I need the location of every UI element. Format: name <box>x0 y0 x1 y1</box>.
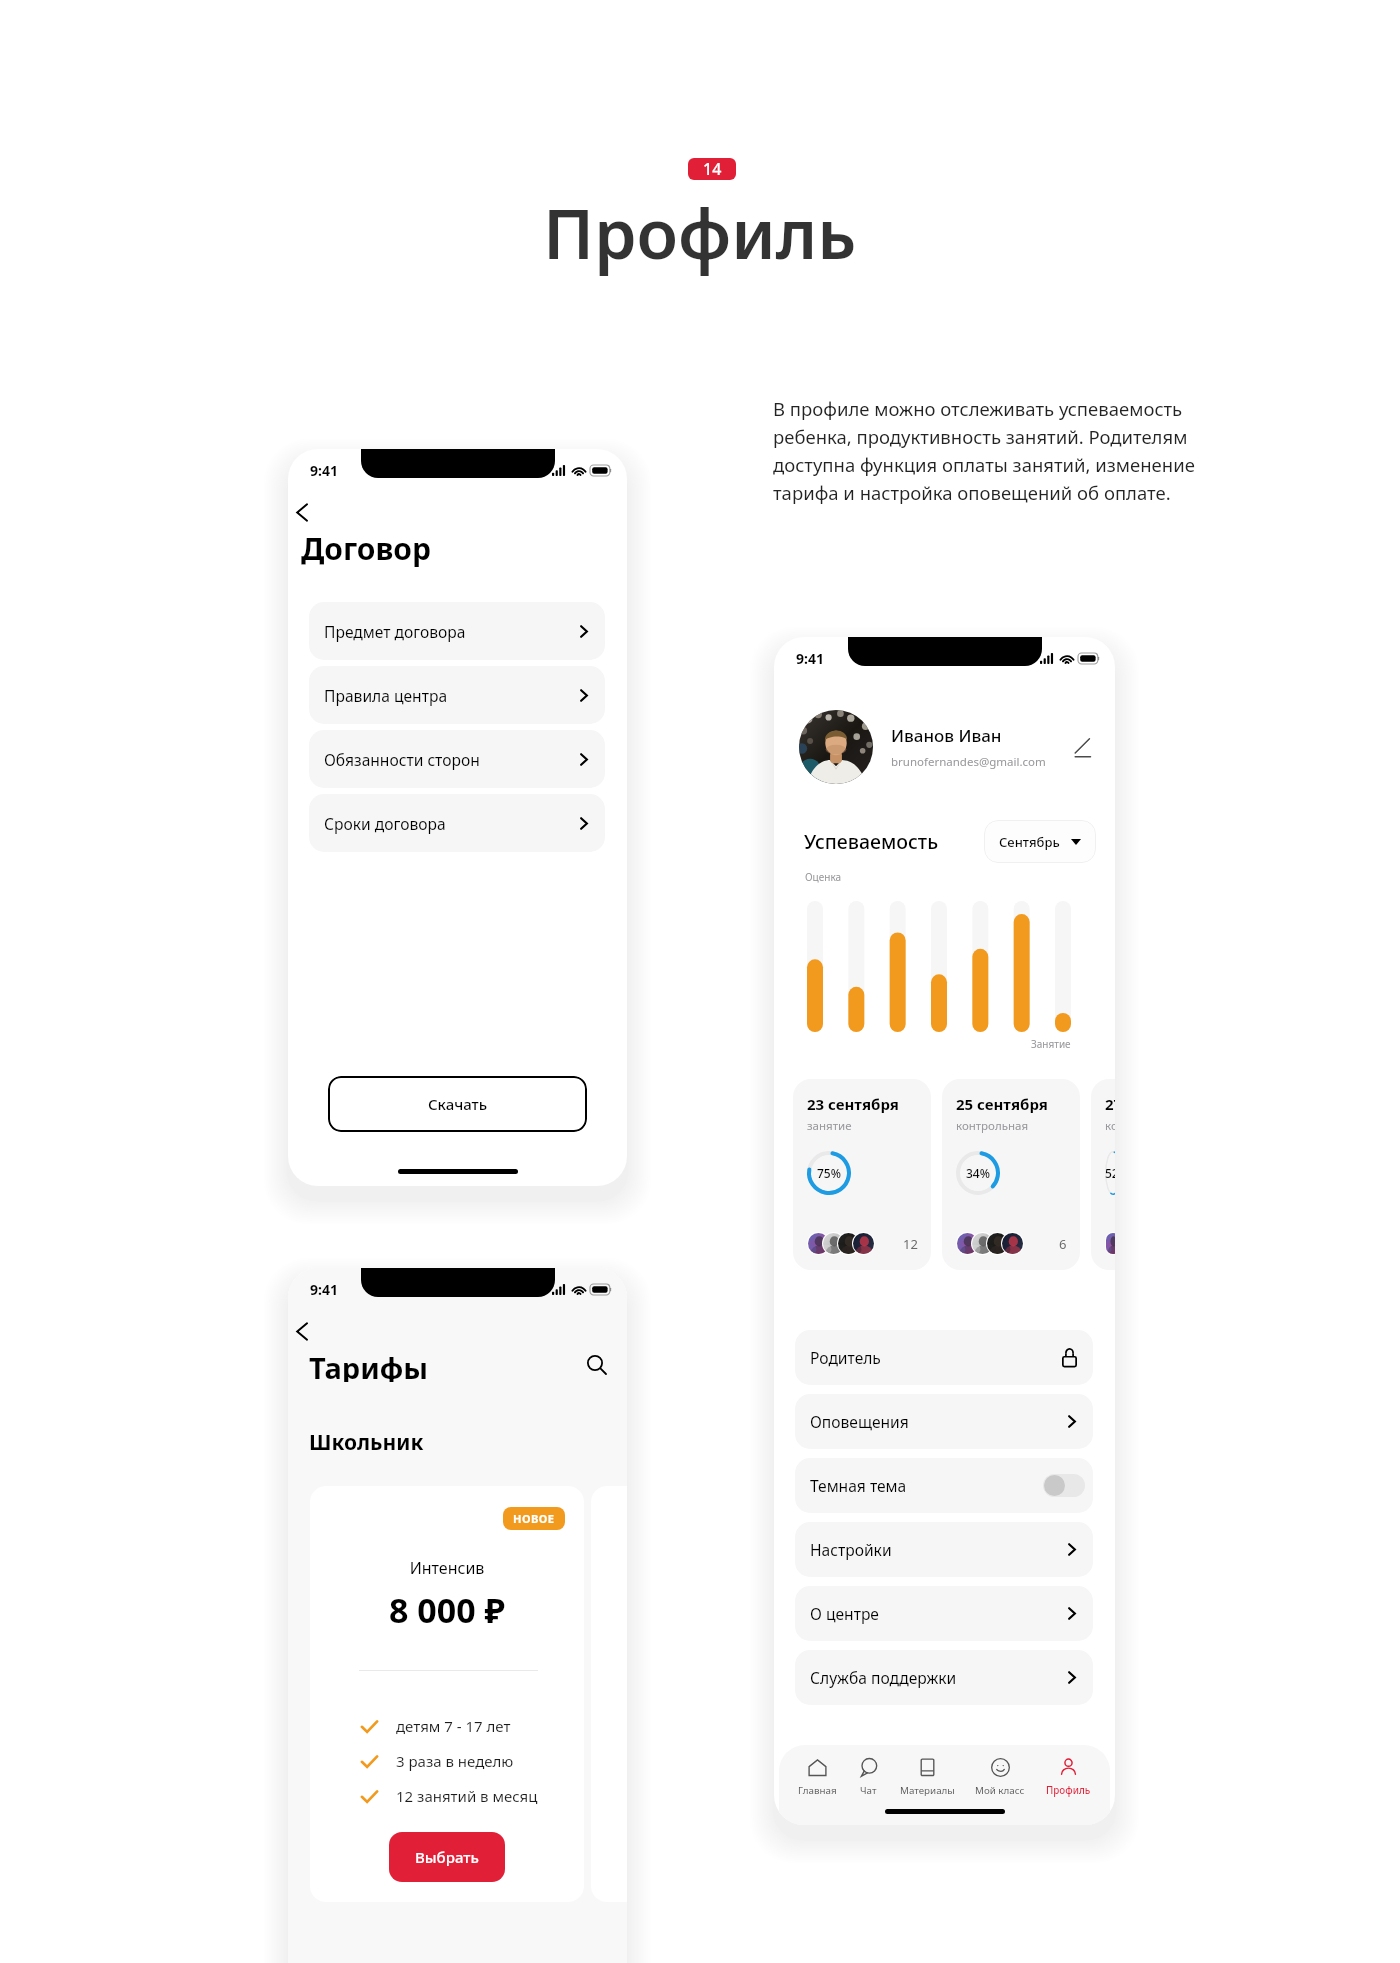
staticText: Мой класс <box>975 1784 1025 1797</box>
button[interactable]: Профиль <box>1042 1756 1095 1798</box>
staticText: контрольная <box>1105 1118 1115 1134</box>
staticText: Профиль <box>543 186 857 279</box>
staticText: Родитель <box>810 1347 1061 1368</box>
staticText: 52% <box>1105 1165 1115 1181</box>
button[interactable]: Правила центра <box>309 666 605 724</box>
button[interactable]: Back <box>288 495 323 532</box>
staticText: Профиль <box>1046 1784 1091 1797</box>
staticText: Скачать <box>428 1094 488 1114</box>
staticText: О центре <box>810 1603 1068 1624</box>
button[interactable]: Back <box>288 1314 323 1351</box>
staticText: 12 занятий в месяц <box>396 1786 538 1806</box>
staticText: Интенсив <box>310 1557 584 1579</box>
staticText: 9:41 <box>310 461 338 480</box>
button[interactable]: Главная <box>794 1756 841 1798</box>
staticText: Занятие <box>1031 1037 1071 1051</box>
staticText: Главная <box>798 1784 837 1797</box>
staticText: 27 сентября <box>1105 1094 1115 1114</box>
button[interactable]: Темная тема <box>795 1458 1093 1513</box>
staticText: Сроки договора <box>324 813 580 834</box>
staticText: brunofernandes@gmail.com <box>891 754 1046 770</box>
button[interactable]: 23 сентября <box>793 1079 931 1270</box>
staticText: НОВОЕ <box>513 1511 555 1526</box>
button[interactable]: Предмет договора <box>309 602 605 660</box>
staticText: 23 сентября <box>807 1094 899 1114</box>
staticText: 3 раза в неделю <box>396 1751 514 1771</box>
button[interactable]: Скачать <box>328 1076 587 1132</box>
staticText: детям 7 - 17 лет <box>396 1716 511 1736</box>
button[interactable]: Чат <box>854 1756 883 1798</box>
button[interactable]: Настройки <box>795 1522 1093 1577</box>
staticText: Обязанности сторон <box>324 749 580 770</box>
staticText: 6 <box>1059 1235 1067 1253</box>
staticText: Материалы <box>900 1784 955 1797</box>
button[interactable]: 27 сентября <box>1091 1079 1115 1270</box>
staticText: 14 <box>703 158 722 180</box>
staticText: Иванов Иван <box>891 724 1002 747</box>
button[interactable]: Мой класс <box>971 1756 1029 1798</box>
staticText: Служба поддержки <box>810 1667 1068 1688</box>
staticText: Договор <box>301 528 432 569</box>
staticText: 34% <box>966 1165 990 1181</box>
staticText: Предмет договора <box>324 621 580 642</box>
staticText: контрольная <box>956 1118 1029 1134</box>
staticText: Оценка <box>805 870 842 884</box>
staticText: Выбрать <box>415 1847 479 1867</box>
staticText: 75% <box>817 1165 841 1181</box>
staticText: 9:41 <box>310 1280 338 1299</box>
staticText: Чат <box>860 1784 877 1797</box>
button[interactable]: Сроки договора <box>309 794 605 852</box>
staticText: Темная тема <box>810 1475 1034 1496</box>
staticText: Оповещения <box>810 1411 1068 1432</box>
staticText: 25 сентября <box>956 1094 1048 1114</box>
staticText: Правила центра <box>324 685 580 706</box>
staticText: 8 000 ₽ <box>310 1587 584 1633</box>
button[interactable]: Обязанности сторон <box>309 730 605 788</box>
staticText: Тарифы <box>309 1348 586 1382</box>
button[interactable]: Родитель <box>795 1330 1093 1385</box>
staticText: Успеваемость <box>804 828 984 855</box>
staticText: Школьник <box>309 1428 424 1457</box>
button[interactable]: 25 сентября <box>942 1079 1080 1270</box>
button[interactable]: Оповещения <box>795 1394 1093 1449</box>
button[interactable]: О центре <box>795 1586 1093 1641</box>
button[interactable]: Выбрать <box>389 1832 505 1882</box>
staticText: Сентябрь <box>999 833 1060 851</box>
staticText: В профиле можно отслеживать успеваемость… <box>773 396 1221 505</box>
button[interactable]: Search <box>586 1354 608 1376</box>
staticText: 9:41 <box>796 649 824 668</box>
button[interactable]: Служба поддержки <box>795 1650 1093 1705</box>
staticText: Настройки <box>810 1539 1068 1560</box>
staticText: 12 <box>903 1235 918 1253</box>
button[interactable]: НОВОЕ <box>310 1486 584 1902</box>
button[interactable]: Материалы <box>896 1756 959 1798</box>
button[interactable]: Сентябрь <box>984 820 1096 863</box>
button[interactable]: Edit profile <box>1069 735 1094 760</box>
staticText: занятие <box>807 1118 852 1134</box>
